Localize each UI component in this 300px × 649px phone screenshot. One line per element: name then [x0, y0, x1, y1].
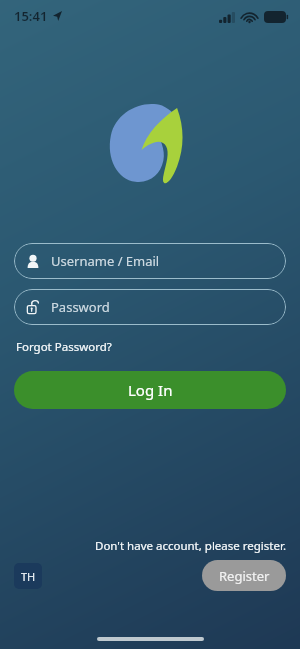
button[interactable]: Register	[202, 560, 286, 591]
staticText: 15:41	[14, 7, 48, 25]
staticText: Username / Email	[51, 252, 160, 270]
staticText: Register	[219, 567, 270, 585]
button[interactable]: Log In	[14, 371, 286, 409]
staticText: Forgot Password?	[16, 339, 112, 355]
button[interactable]: Password	[14, 289, 286, 325]
staticText: TH	[21, 569, 36, 584]
button[interactable]: Forgot Password?	[14, 337, 114, 357]
staticText: Don't have account, please register.	[95, 538, 286, 554]
staticText: Password	[51, 298, 110, 316]
staticText: Log In	[128, 380, 173, 400]
button[interactable]: Username / Email	[14, 243, 286, 279]
button[interactable]: Language: Thai	[14, 563, 42, 589]
